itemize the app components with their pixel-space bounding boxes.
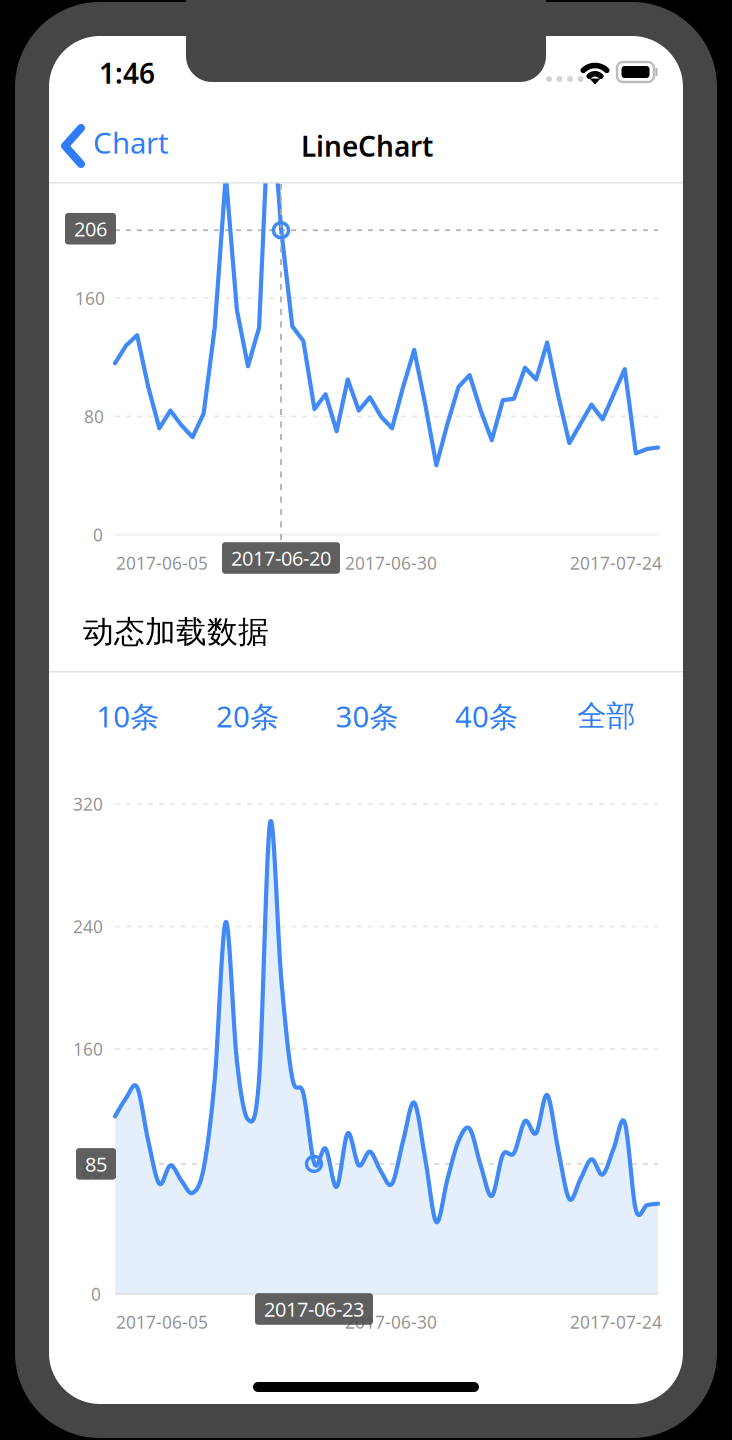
staticText: 85: [85, 1151, 107, 1177]
staticText: 30条: [335, 696, 398, 735]
staticText: 2017-06-23: [264, 1296, 364, 1322]
staticText: 80: [84, 405, 104, 428]
staticText: LineChart: [301, 127, 433, 165]
staticText: 20条: [216, 696, 279, 735]
button[interactable]: 20条: [188, 673, 307, 759]
staticText: 动态加载数据: [83, 613, 269, 651]
button[interactable]: 全部: [546, 673, 666, 759]
staticText: 160: [75, 287, 105, 310]
button[interactable]: 10条: [68, 673, 188, 759]
button[interactable]: 40条: [427, 673, 546, 759]
staticText: 2017-06-30: [345, 551, 437, 574]
staticText: Chart: [93, 123, 169, 162]
staticText: 0: [91, 1282, 101, 1305]
button[interactable]: 30条: [307, 673, 427, 759]
staticText: 2017-07-24: [570, 1310, 662, 1333]
staticText: 2017-06-20: [231, 545, 331, 571]
staticText: 2017-06-30: [345, 1310, 437, 1333]
staticText: 1:46: [99, 54, 155, 92]
staticText: 80: [82, 1160, 102, 1183]
button[interactable]: Chart: [49, 110, 184, 182]
staticText: 2017-06-05: [116, 551, 208, 574]
staticText: 2017-07-24: [570, 551, 662, 574]
staticText: 240: [73, 915, 103, 938]
staticText: 160: [73, 1037, 103, 1060]
staticText: 0: [93, 523, 103, 546]
staticText: 2017-06-05: [116, 1310, 208, 1333]
staticText: 320: [73, 793, 103, 816]
staticText: 全部: [577, 698, 635, 734]
staticText: 10条: [96, 696, 159, 735]
staticText: 206: [74, 215, 107, 242]
staticText: 40条: [455, 696, 518, 735]
